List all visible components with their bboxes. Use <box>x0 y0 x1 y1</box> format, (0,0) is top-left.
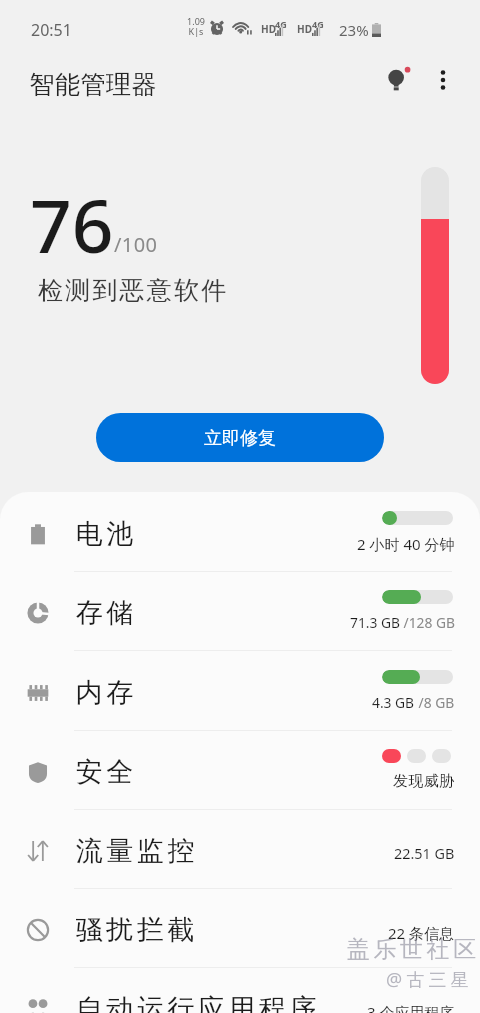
staticText: 4.3 GB <box>372 693 415 712</box>
button[interactable]: 电池 <box>0 493 480 572</box>
button[interactable]: 安全 <box>0 731 480 810</box>
staticText: 盖乐世社区 <box>345 935 478 964</box>
staticText: 自动运行应用程序 <box>74 992 318 1013</box>
staticText: 1.09 K|s <box>187 15 205 37</box>
staticText: 4G <box>312 18 324 30</box>
staticText: 内存 <box>74 676 135 710</box>
staticText: 71.3 GB <box>350 613 400 632</box>
staticText: /100 <box>114 231 158 258</box>
staticText: HD <box>297 22 312 36</box>
staticText: @古三星 <box>386 967 473 992</box>
staticText: 22 条信息 <box>388 923 455 943</box>
button[interactable]: More options <box>419 56 467 104</box>
staticText: /128 GB <box>400 613 455 632</box>
staticText: 4G <box>275 18 287 30</box>
staticText: /8 GB <box>415 693 455 712</box>
staticText: 安全 <box>74 755 135 789</box>
button[interactable]: 自动运行应用程序 <box>0 968 480 1013</box>
staticText: 检测到恶意软件 <box>38 275 229 306</box>
staticText: 23% <box>339 20 369 40</box>
button[interactable]: 存储 <box>0 572 480 651</box>
button[interactable]: 流量监控 <box>0 810 480 889</box>
staticText: 电池 <box>74 517 135 551</box>
staticText: 76 <box>30 175 114 274</box>
staticText: 流量监控 <box>74 834 196 868</box>
staticText: 立即修复 <box>204 427 276 450</box>
staticText: 22.51 GB <box>394 844 455 864</box>
button[interactable]: 立即修复 <box>96 413 384 462</box>
staticText: 2 小时 40 分钟 <box>357 534 455 554</box>
staticText: 存储 <box>74 596 135 630</box>
staticText: 20:51 <box>31 19 72 41</box>
staticText: 智能管理器 <box>29 69 157 100</box>
button[interactable]: 骚扰拦截 <box>0 889 480 968</box>
staticText: 3 个应用程序 <box>367 1002 455 1013</box>
staticText: 骚扰拦截 <box>74 913 196 947</box>
staticText: HD <box>261 22 276 36</box>
staticText: 发现威胁 <box>393 772 455 791</box>
button[interactable]: Tips <box>375 56 423 104</box>
button[interactable]: 内存 <box>0 652 480 731</box>
